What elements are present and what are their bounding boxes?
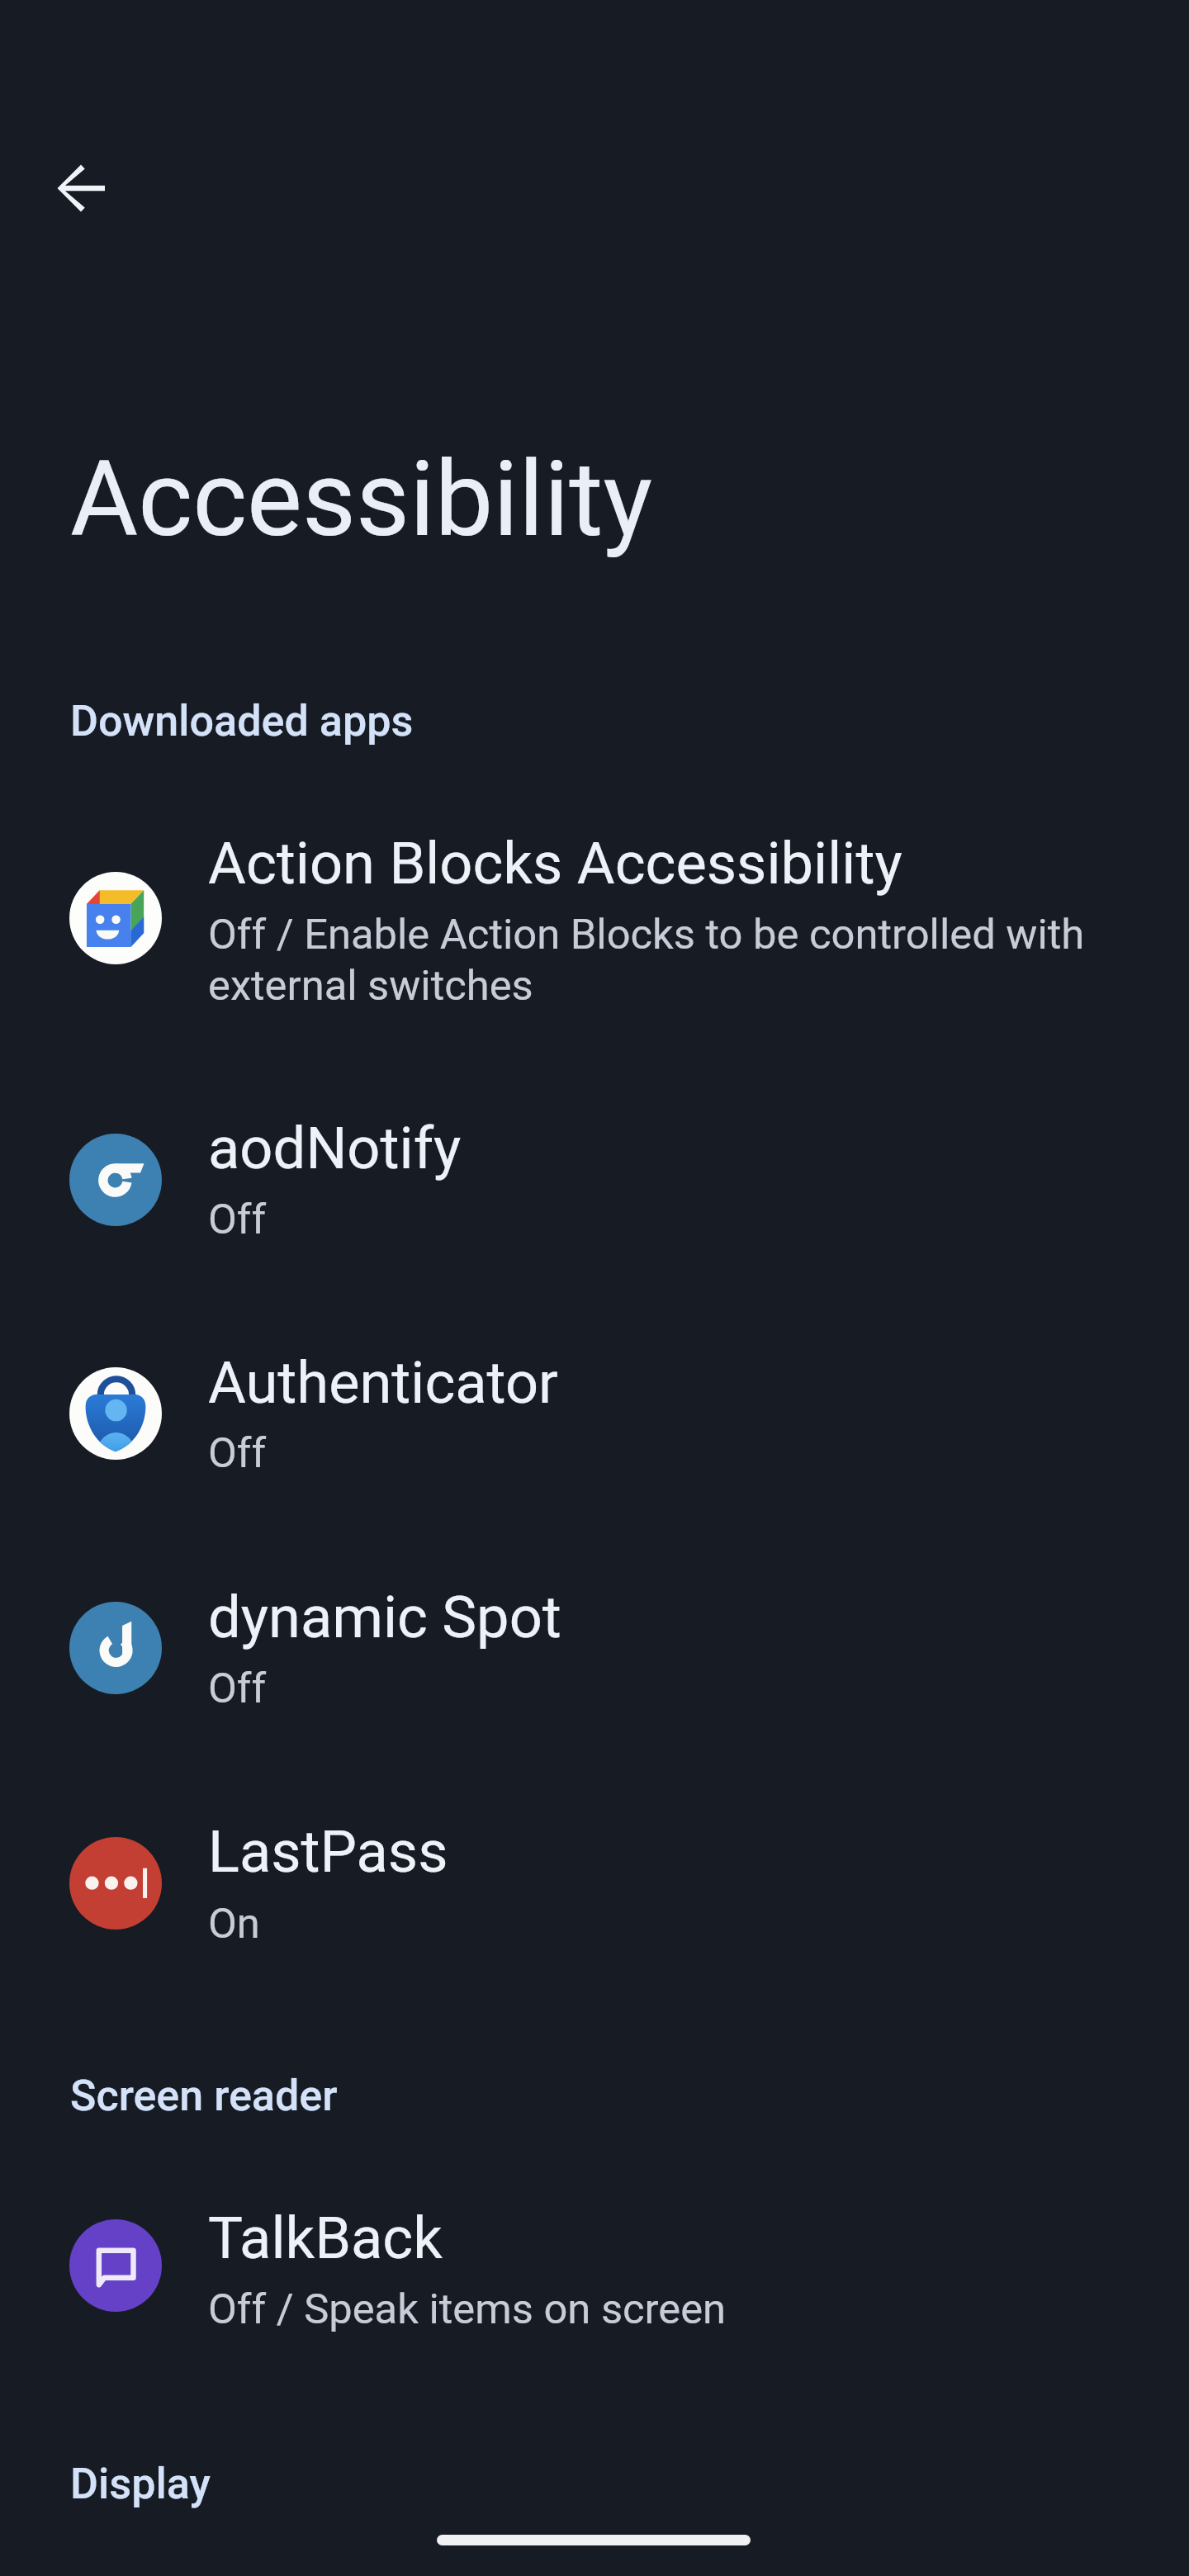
staticText: Off / Enable Action Blocks to be control… xyxy=(208,910,1116,1010)
button[interactable]: Display xyxy=(0,2437,1189,2520)
staticText: Display xyxy=(70,2459,211,2509)
staticText: dynamic Spot xyxy=(208,1584,561,1652)
staticText: Off xyxy=(208,1428,1116,1477)
staticText: Downloaded apps xyxy=(70,696,414,746)
staticText: Off xyxy=(208,1664,1116,1712)
button[interactable]: Authenticator xyxy=(0,1305,1189,1517)
button[interactable]: Back xyxy=(35,142,127,234)
staticText: Screen reader xyxy=(70,2071,338,2121)
button[interactable]: Screen reader xyxy=(0,2049,1189,2132)
button[interactable]: Action Blocks Accessibility xyxy=(0,785,1189,998)
button[interactable]: dynamic Spot xyxy=(0,1539,1189,1752)
staticText: On xyxy=(208,1899,1116,1948)
button[interactable]: TalkBack xyxy=(0,2160,1189,2373)
staticText: TalkBack xyxy=(208,2204,443,2273)
staticText: Action Blocks Accessibility xyxy=(208,830,902,898)
staticText: Off / Speak items on screen xyxy=(208,2285,1116,2333)
staticText: aodNotify xyxy=(208,1115,462,1183)
button[interactable]: Downloaded apps xyxy=(0,675,1189,757)
button[interactable]: aodNotify xyxy=(0,1070,1189,1283)
staticText: Off xyxy=(208,1195,1116,1243)
staticText: Authenticator xyxy=(208,1349,558,1418)
staticText: Accessibility xyxy=(70,438,653,561)
staticText: LastPass xyxy=(208,1818,448,1887)
button[interactable]: LastPass xyxy=(0,1773,1189,1987)
